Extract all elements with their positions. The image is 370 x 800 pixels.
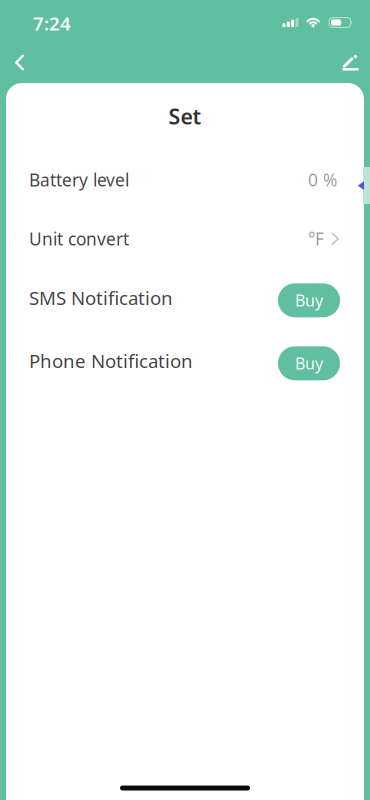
- staticText: 0 %: [308, 168, 337, 191]
- staticText: 7:24: [33, 11, 71, 36]
- staticText: °F: [308, 227, 324, 250]
- button[interactable]: Back: [0, 43, 39, 81]
- button[interactable]: Buy: [278, 346, 340, 380]
- button[interactable]: Buy: [278, 283, 340, 317]
- staticText: Battery level: [29, 168, 129, 191]
- staticText: Buy: [295, 353, 323, 374]
- staticText: Set: [168, 102, 201, 130]
- staticText: Phone Notification: [29, 348, 193, 373]
- button[interactable]: Unit convert: [6, 211, 364, 267]
- staticText: Unit convert: [29, 227, 129, 250]
- button[interactable]: Edit: [328, 43, 370, 81]
- staticText: SMS Notification: [29, 285, 173, 310]
- staticText: Buy: [295, 290, 323, 311]
